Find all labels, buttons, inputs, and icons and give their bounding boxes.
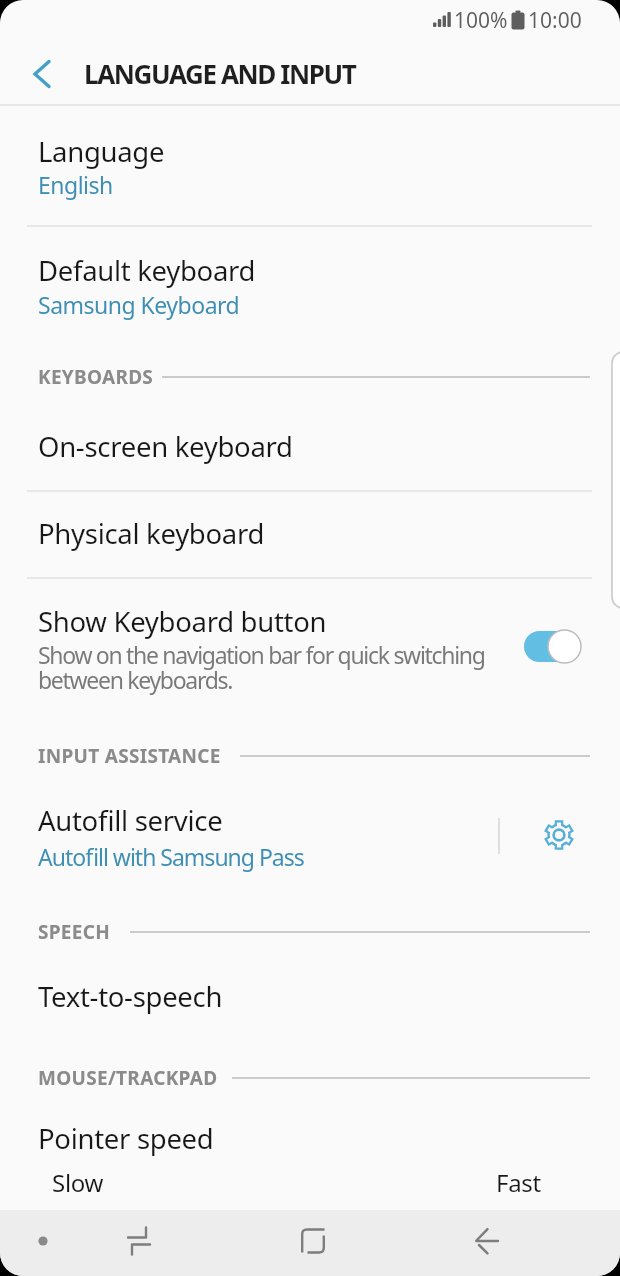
- button[interactable]: [0, 403, 620, 490]
- staticText: Physical keyboard: [38, 515, 265, 552]
- staticText: Language: [38, 133, 165, 170]
- staticText: Default keyboard: [38, 252, 256, 289]
- staticText: LANGUAGE AND INPUT: [84, 56, 356, 91]
- staticText: Show Keyboard button: [38, 603, 327, 640]
- staticText: KEYBOARDS: [38, 364, 154, 390]
- staticText: Slow: [52, 1166, 104, 1199]
- staticText: Fast: [496, 1166, 541, 1199]
- staticText: Show on the navigation bar for quick swi…: [38, 639, 485, 670]
- button[interactable]: [464, 1219, 508, 1263]
- staticText: Pointer speed: [38, 1120, 214, 1157]
- staticText: Samsung Keyboard: [38, 289, 240, 320]
- staticText: SPEECH: [38, 919, 111, 945]
- button[interactable]: [0, 106, 620, 225]
- button[interactable]: [0, 1104, 620, 1208]
- button[interactable]: [0, 227, 620, 345]
- button[interactable]: [0, 782, 620, 900]
- staticText: 100%: [454, 6, 508, 35]
- staticText: 10:00: [528, 6, 582, 35]
- staticText: Autofill service: [38, 802, 223, 839]
- button[interactable]: [524, 631, 581, 662]
- button[interactable]: [20, 52, 64, 96]
- staticText: MOUSE/TRACKPAD: [38, 1065, 218, 1091]
- staticText: INPUT ASSISTANCE: [38, 743, 221, 769]
- button[interactable]: [537, 813, 581, 857]
- button[interactable]: [117, 1219, 161, 1263]
- staticText: Text-to-speech: [38, 978, 223, 1015]
- button[interactable]: [0, 962, 620, 1030]
- button[interactable]: [291, 1219, 335, 1263]
- button[interactable]: [0, 492, 620, 577]
- staticText: On-screen keyboard: [38, 428, 293, 465]
- button[interactable]: [31, 1229, 55, 1253]
- staticText: between keyboards.: [38, 664, 233, 695]
- staticText: English: [38, 169, 113, 200]
- staticText: Autofill with Samsung Pass: [38, 841, 304, 872]
- button[interactable]: [0, 579, 620, 712]
